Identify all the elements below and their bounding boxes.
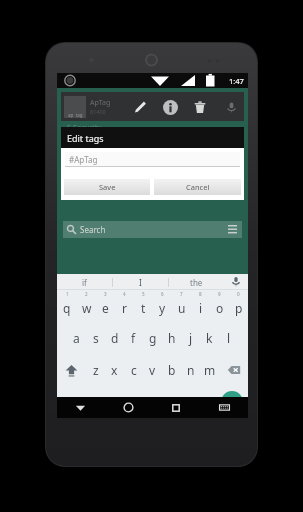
button[interactable]: z bbox=[86, 354, 105, 386]
staticText: p bbox=[235, 300, 243, 316]
staticText: I bbox=[139, 277, 142, 288]
staticText: n bbox=[187, 362, 195, 378]
button[interactable]: Space bbox=[122, 386, 198, 418]
staticText: 5 bbox=[142, 291, 145, 297]
staticText: #ApTag bbox=[69, 154, 98, 165]
button[interactable]: Save bbox=[64, 179, 150, 195]
button[interactable]: 4 bbox=[115, 290, 134, 322]
button[interactable]: l bbox=[219, 322, 238, 354]
button[interactable]: 9 bbox=[210, 290, 229, 322]
button[interactable]: c bbox=[124, 354, 143, 386]
staticText: ap tag bbox=[68, 112, 83, 118]
button[interactable]: n bbox=[181, 354, 200, 386]
staticText: 1 bbox=[66, 291, 69, 297]
staticText: , bbox=[94, 392, 97, 407]
staticText: 4 bbox=[123, 291, 126, 297]
staticText: 3 bbox=[104, 291, 107, 297]
staticText: i bbox=[199, 300, 203, 316]
button[interactable]: m bbox=[200, 354, 219, 386]
button[interactable]: h bbox=[162, 322, 181, 354]
button[interactable]: Enter bbox=[216, 386, 248, 418]
staticText: k bbox=[206, 330, 213, 346]
button[interactable]: 2 bbox=[77, 290, 96, 322]
button[interactable]: Delete bbox=[187, 94, 213, 120]
button[interactable]: Recents bbox=[152, 397, 200, 418]
staticText: b bbox=[168, 362, 176, 378]
staticText: S Security bbox=[67, 122, 102, 132]
button[interactable]: Back bbox=[57, 397, 104, 418]
staticText: r bbox=[122, 300, 127, 316]
button[interactable]: Backspace bbox=[219, 354, 248, 386]
staticText: ApTag bbox=[90, 98, 111, 108]
staticText: f bbox=[131, 330, 136, 346]
staticText: y bbox=[159, 300, 166, 316]
staticText: x bbox=[111, 362, 118, 378]
staticText: t bbox=[141, 300, 146, 316]
button[interactable]: I bbox=[113, 274, 168, 290]
button[interactable]: ?123 bbox=[57, 386, 86, 418]
staticText: c bbox=[131, 362, 137, 378]
staticText: Save bbox=[99, 182, 116, 192]
staticText: m bbox=[204, 362, 216, 378]
staticText: Security bbox=[67, 132, 92, 141]
staticText: d bbox=[111, 330, 119, 346]
staticText: Edit tags bbox=[67, 132, 104, 144]
button[interactable]: 1 bbox=[57, 290, 77, 322]
button[interactable]: k bbox=[200, 322, 219, 354]
button[interactable]: the bbox=[169, 274, 224, 290]
button[interactable]: 5 bbox=[134, 290, 153, 322]
button[interactable]: Search bbox=[63, 221, 242, 238]
staticText: o bbox=[216, 300, 224, 316]
button[interactable]: s bbox=[86, 322, 105, 354]
button[interactable]: #ApTag bbox=[65, 152, 240, 167]
button[interactable]: g bbox=[143, 322, 162, 354]
staticText: h bbox=[168, 330, 176, 346]
button[interactable]: a bbox=[67, 322, 86, 354]
button[interactable]: Edit bbox=[127, 94, 153, 120]
staticText: if bbox=[82, 277, 87, 288]
button[interactable]: Shift bbox=[57, 354, 86, 386]
staticText: v bbox=[149, 362, 156, 378]
button[interactable]: j bbox=[181, 322, 200, 354]
staticText: Search bbox=[80, 224, 106, 235]
button[interactable]: 3 bbox=[96, 290, 115, 322]
button[interactable]: 7 bbox=[172, 290, 191, 322]
staticText: 0 bbox=[237, 291, 240, 297]
staticText: q bbox=[63, 300, 71, 316]
button[interactable]: d bbox=[105, 322, 124, 354]
staticText: w bbox=[82, 300, 92, 316]
button[interactable]: 6 bbox=[153, 290, 172, 322]
staticText: Cancel bbox=[186, 182, 210, 192]
staticText: e bbox=[102, 300, 109, 316]
staticText: z bbox=[93, 362, 99, 378]
button[interactable]: , bbox=[86, 386, 104, 418]
staticText: 7 bbox=[180, 291, 183, 297]
staticText: 81400 bbox=[90, 108, 106, 115]
staticText: u bbox=[178, 300, 186, 316]
staticText: s bbox=[93, 330, 99, 346]
button[interactable]: 0 bbox=[229, 290, 248, 322]
button[interactable]: v bbox=[143, 354, 162, 386]
button[interactable]: Cancel bbox=[154, 179, 241, 195]
button[interactable]: Tag thumbnail bbox=[64, 96, 86, 118]
staticText: j bbox=[189, 330, 193, 346]
button[interactable]: if bbox=[57, 274, 112, 290]
staticText: 8 bbox=[199, 291, 202, 297]
button[interactable]: Change language bbox=[104, 386, 122, 418]
button[interactable]: b bbox=[162, 354, 181, 386]
button[interactable]: . bbox=[198, 386, 216, 418]
staticText: . bbox=[206, 392, 209, 407]
button[interactable]: Info bbox=[157, 94, 183, 120]
button[interactable]: Voice bbox=[221, 97, 241, 117]
button[interactable]: Home bbox=[104, 397, 152, 418]
button[interactable]: Voice input bbox=[224, 274, 248, 290]
staticText: g bbox=[149, 330, 157, 346]
button[interactable]: 8 bbox=[191, 290, 210, 322]
button[interactable]: x bbox=[105, 354, 124, 386]
staticText: the bbox=[190, 277, 203, 288]
staticText: a bbox=[73, 330, 80, 346]
button[interactable]: Keyboard bbox=[200, 397, 248, 418]
staticText: 9 bbox=[218, 291, 221, 297]
button[interactable]: f bbox=[124, 322, 143, 354]
staticText: 6 bbox=[161, 291, 164, 297]
